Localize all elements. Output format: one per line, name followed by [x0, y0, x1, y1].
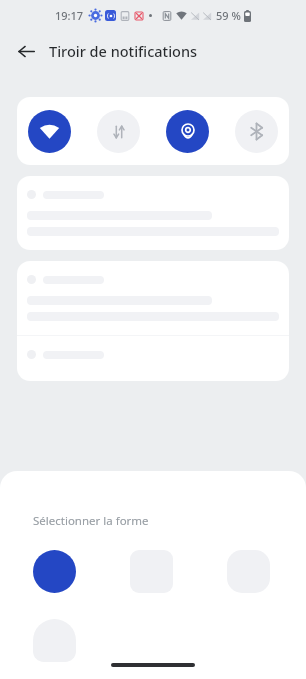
button[interactable]: Forme arquée — [33, 619, 76, 662]
button[interactable]: Désactivé — [235, 110, 278, 153]
staticText: Sélectionner la forme — [33, 513, 149, 529]
button[interactable]: Activé — [28, 110, 71, 153]
button[interactable] — [17, 336, 289, 373]
button[interactable]: Carré très arrondi — [227, 550, 270, 593]
staticText: Tiroir de notifications — [49, 41, 198, 61]
button[interactable] — [17, 261, 289, 335]
button[interactable]: Désactivé — [97, 110, 140, 153]
staticText: 59 % — [216, 8, 241, 23]
staticText: 19:17 — [55, 8, 84, 23]
button[interactable] — [17, 176, 289, 250]
button[interactable]: Cercle — [33, 550, 76, 593]
button[interactable]: Activé — [166, 110, 209, 153]
button[interactable]: Retour — [8, 33, 44, 69]
